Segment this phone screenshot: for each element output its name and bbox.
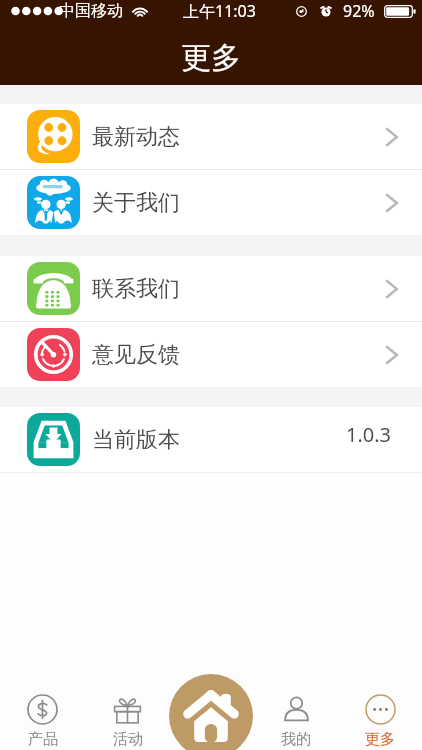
staticText: 更多 [365, 730, 395, 749]
staticText: 更多 [181, 39, 241, 77]
button[interactable]: 活动 [85, 664, 170, 750]
button[interactable]: 最新动态 [0, 104, 422, 169]
button[interactable]: 首页 [169, 674, 253, 750]
staticText: 关于我们 [92, 189, 180, 217]
button[interactable]: 产品 [0, 664, 85, 750]
button[interactable]: 联系我们 [0, 256, 422, 321]
button[interactable]: 我的 [254, 664, 338, 750]
button[interactable]: 当前版本 [0, 407, 422, 472]
staticText: 上午11:03 [183, 0, 256, 22]
staticText: 92% [343, 0, 375, 22]
button[interactable]: 意见反馈 [0, 322, 422, 387]
staticText: 最新动态 [92, 123, 180, 151]
staticText: 中国移动 [59, 1, 123, 21]
staticText: 产品 [28, 730, 58, 749]
staticText: 活动 [113, 730, 143, 749]
button[interactable]: 更多 [338, 664, 422, 750]
staticText: 意见反馈 [92, 341, 180, 369]
button[interactable]: 关于我们 [0, 170, 422, 235]
staticText: 当前版本 [92, 426, 180, 454]
staticText: 我的 [281, 730, 311, 749]
staticText: 联系我们 [92, 275, 180, 303]
staticText: 1.0.3 [346, 421, 392, 448]
